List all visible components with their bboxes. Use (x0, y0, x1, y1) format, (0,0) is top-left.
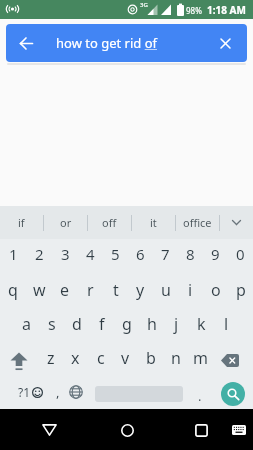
button[interactable]: 6 (128, 239, 153, 273)
staticText: d (72, 313, 82, 335)
staticText: off (102, 215, 117, 230)
button[interactable]: off (88, 206, 131, 239)
button[interactable]: s (39, 307, 64, 341)
button[interactable]: 5 (103, 239, 128, 273)
staticText: 6 (136, 244, 145, 264)
button[interactable]: office (176, 206, 219, 239)
button[interactable]: a (14, 307, 39, 341)
button[interactable]: 2 (26, 239, 52, 273)
button[interactable] (0, 341, 38, 375)
staticText: w (33, 279, 46, 301)
staticText: 1:18 AM (207, 3, 246, 17)
staticText: s (48, 313, 56, 335)
staticText: 8 (186, 244, 195, 264)
staticText: 5 (111, 244, 120, 264)
staticText: q (8, 279, 18, 301)
button[interactable]: y (128, 273, 153, 307)
staticText: l (224, 313, 229, 335)
button[interactable]: t (103, 273, 128, 307)
button[interactable] (66, 375, 86, 409)
staticText: y (136, 279, 145, 301)
button[interactable]: i (178, 273, 203, 307)
button[interactable]: e (52, 273, 78, 307)
staticText: it (150, 215, 157, 230)
button[interactable]: l (214, 307, 239, 341)
button[interactable] (221, 382, 245, 406)
button[interactable]: f (89, 307, 114, 341)
button[interactable] (213, 341, 251, 375)
button[interactable]: 3 (52, 239, 78, 273)
button[interactable]: v (113, 341, 138, 375)
staticText: j (174, 313, 179, 335)
button[interactable]: 8 (178, 239, 203, 273)
button[interactable]: z (38, 341, 63, 375)
staticText: ?1 (18, 384, 31, 400)
button[interactable]: m (188, 341, 213, 375)
button[interactable]: b (138, 341, 163, 375)
button[interactable]: 4 (78, 239, 103, 273)
button[interactable]: k (189, 307, 214, 341)
button[interactable]: 7 (153, 239, 178, 273)
staticText: or (60, 215, 72, 230)
staticText: k (197, 313, 206, 335)
button[interactable] (185, 414, 217, 446)
button[interactable]: 0 (228, 239, 253, 273)
staticText: office (183, 215, 212, 230)
button[interactable]: 1 (0, 239, 26, 273)
button[interactable] (111, 414, 143, 446)
button[interactable] (220, 206, 253, 239)
staticText: e (60, 279, 70, 301)
staticText: a (22, 313, 31, 335)
staticText: 98% (186, 5, 202, 16)
button[interactable]: r (78, 273, 103, 307)
staticText: g (122, 313, 132, 335)
staticText: 4 (86, 244, 95, 264)
button[interactable]: w (26, 273, 52, 307)
staticText: . (198, 387, 202, 405)
staticText: 3G (140, 1, 148, 9)
staticText: 3 (61, 244, 70, 264)
button[interactable] (215, 33, 235, 53)
button[interactable]: 9 (203, 239, 228, 273)
staticText: f (99, 313, 105, 335)
staticText: how to get rid of (56, 34, 158, 52)
button[interactable]: o (203, 273, 228, 307)
staticText: c (97, 347, 105, 369)
staticText: , (56, 383, 60, 401)
staticText: z (47, 347, 55, 369)
staticText: 0 (236, 244, 245, 264)
button[interactable]: d (64, 307, 89, 341)
staticText: u (161, 279, 171, 301)
button[interactable]: c (88, 341, 113, 375)
staticText: if (18, 215, 25, 230)
button[interactable] (33, 414, 65, 446)
button[interactable]: h (139, 307, 164, 341)
staticText: p (236, 279, 246, 301)
staticText: v (121, 347, 130, 369)
staticText: x (71, 347, 80, 369)
button[interactable]: n (163, 341, 188, 375)
staticText: i (188, 279, 193, 301)
button[interactable]: or (44, 206, 87, 239)
button[interactable]: . (187, 375, 213, 409)
button[interactable]: x (63, 341, 88, 375)
staticText: t (113, 279, 119, 301)
button[interactable]: g (114, 307, 139, 341)
button[interactable] (229, 420, 249, 440)
button[interactable]: j (164, 307, 189, 341)
button[interactable]: how to get rid of (6, 24, 247, 62)
button[interactable]: ?1 (0, 375, 50, 409)
button[interactable] (86, 375, 187, 409)
button[interactable]: u (153, 273, 178, 307)
button[interactable]: q (0, 273, 26, 307)
staticText: b (146, 347, 156, 369)
button[interactable]: it (132, 206, 175, 239)
staticText: o (211, 279, 221, 301)
staticText: h (147, 313, 157, 335)
button[interactable] (13, 30, 39, 56)
button[interactable]: if (0, 206, 43, 239)
button[interactable]: p (228, 273, 253, 307)
button[interactable]: , (50, 375, 66, 409)
staticText: 9 (211, 244, 220, 264)
staticText: 7 (161, 244, 170, 264)
